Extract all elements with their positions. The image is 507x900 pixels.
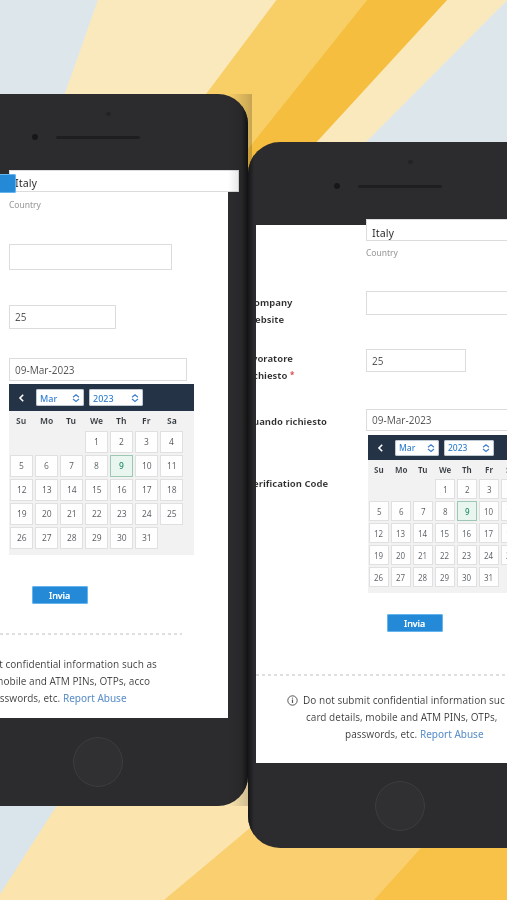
button[interactable]: 9 — [457, 501, 477, 521]
button[interactable]: 25 — [160, 503, 183, 525]
button[interactable]: 8 — [85, 455, 108, 477]
staticText: 9 — [119, 460, 124, 472]
button[interactable]: 29 — [435, 567, 455, 587]
button[interactable]: 18 — [501, 523, 507, 543]
button[interactable]: 4 — [160, 431, 183, 453]
button[interactable]: 30 — [110, 527, 133, 549]
button[interactable]: 17 — [479, 523, 499, 543]
button[interactable]: 5 — [10, 455, 33, 477]
staticText: 15 — [92, 484, 102, 496]
button[interactable]: 31 — [479, 567, 499, 587]
button[interactable]: Previous month — [373, 440, 389, 456]
button[interactable]: 24 — [135, 503, 158, 525]
button[interactable]: 9 — [110, 455, 133, 477]
staticText: Mar — [40, 392, 58, 404]
button[interactable]: 16 — [110, 479, 133, 501]
button[interactable]: 23 — [110, 503, 133, 525]
button[interactable]: Invia — [32, 586, 88, 604]
button[interactable]: 15 — [435, 523, 455, 543]
button[interactable]: 2 — [457, 479, 477, 499]
button[interactable]: 2023 — [89, 389, 143, 406]
button[interactable]: 10 — [135, 455, 158, 477]
staticText: 11 — [506, 506, 507, 517]
staticText: 2 — [119, 436, 124, 448]
staticText: Th — [116, 415, 127, 427]
button[interactable]: Invia — [0, 174, 16, 193]
button[interactable]: 23 — [457, 545, 477, 565]
button[interactable]: 29 — [85, 527, 108, 549]
staticText: 1 — [94, 436, 99, 448]
button[interactable]: 16 — [457, 523, 477, 543]
staticText: 8 — [443, 506, 448, 517]
button[interactable]: 22 — [435, 545, 455, 565]
button[interactable]: 22 — [85, 503, 108, 525]
button[interactable]: 2023 — [444, 440, 494, 456]
button[interactable]: 5 — [369, 501, 389, 521]
button[interactable]: 8 — [435, 501, 455, 521]
staticText: 1 — [443, 484, 448, 495]
button[interactable]: 3 — [135, 431, 158, 453]
button[interactable]: 28 — [413, 567, 433, 587]
staticText: 23 — [117, 508, 127, 520]
button[interactable]: 1 — [85, 431, 108, 453]
button[interactable]: 13 — [35, 479, 58, 501]
button[interactable]: 6 — [391, 501, 411, 521]
button[interactable]: 17 — [135, 479, 158, 501]
staticText: Tu — [66, 415, 77, 427]
staticText: chiesto — [253, 369, 288, 382]
button[interactable]: 14 — [60, 479, 83, 501]
staticText: 29 — [92, 532, 102, 544]
button[interactable]: Home — [375, 781, 425, 831]
button[interactable]: 27 — [35, 527, 58, 549]
button[interactable]: 11 — [501, 501, 507, 521]
staticText: erification Code — [253, 477, 329, 490]
button[interactable]: 12 — [369, 523, 389, 543]
button[interactable]: 14 — [413, 523, 433, 543]
button[interactable]: 12 — [10, 479, 33, 501]
button[interactable]: 1 — [435, 479, 455, 499]
staticText: 10 — [142, 460, 152, 472]
button[interactable]: Mar — [395, 440, 439, 456]
button[interactable]: Report Abuse — [420, 727, 484, 741]
button[interactable]: 13 — [391, 523, 411, 543]
button[interactable]: 31 — [135, 527, 158, 549]
button[interactable]: 19 — [369, 545, 389, 565]
button[interactable]: Invia — [387, 614, 443, 632]
button[interactable]: 25 — [501, 545, 507, 565]
button[interactable]: 21 — [60, 503, 83, 525]
button[interactable]: 11 — [160, 455, 183, 477]
button[interactable]: Mar — [36, 389, 84, 406]
staticText: 23 — [462, 550, 472, 561]
button[interactable]: 20 — [35, 503, 58, 525]
button[interactable]: 7 — [60, 455, 83, 477]
button[interactable]: 24 — [479, 545, 499, 565]
button[interactable]: 2 — [110, 431, 133, 453]
button[interactable]: 26 — [369, 567, 389, 587]
button[interactable]: Report Abuse — [63, 691, 127, 705]
button[interactable]: 6 — [35, 455, 58, 477]
staticText: 8 — [94, 460, 99, 472]
button[interactable]: 30 — [457, 567, 477, 587]
staticText: Do not submit confidential information s… — [303, 693, 505, 707]
button[interactable]: 10 — [479, 501, 499, 521]
staticText: 20 — [396, 550, 406, 561]
staticText: 2023 — [93, 392, 114, 404]
button[interactable]: Home — [73, 737, 123, 787]
button[interactable]: 28 — [60, 527, 83, 549]
staticText: ot submit confidential information such … — [0, 657, 157, 671]
staticText: 19 — [17, 508, 27, 520]
button[interactable]: 21 — [413, 545, 433, 565]
button[interactable]: 18 — [160, 479, 183, 501]
staticText: Su — [374, 464, 384, 475]
button[interactable]: 7 — [413, 501, 433, 521]
button[interactable]: 19 — [10, 503, 33, 525]
button[interactable]: Previous month — [14, 390, 30, 406]
button[interactable]: 15 — [85, 479, 108, 501]
button[interactable]: 20 — [391, 545, 411, 565]
staticText: 12 — [374, 528, 384, 539]
button[interactable]: 26 — [10, 527, 33, 549]
button[interactable]: 27 — [391, 567, 411, 587]
button[interactable]: 3 — [479, 479, 499, 499]
staticText: voratore — [252, 352, 293, 365]
button[interactable]: 4 — [501, 479, 507, 499]
